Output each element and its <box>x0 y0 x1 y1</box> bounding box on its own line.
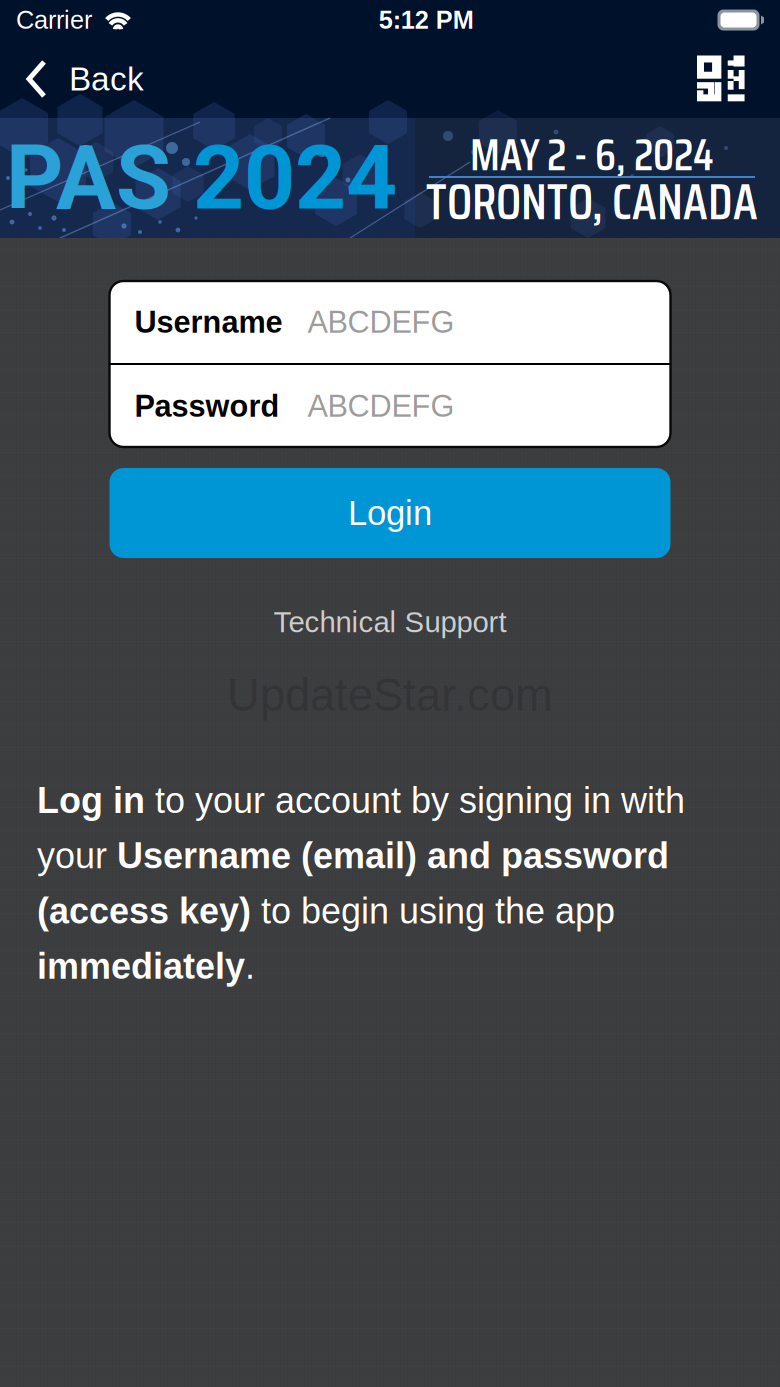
staticText: PAS <box>6 126 171 230</box>
staticText: Log in to your account by signing in wit… <box>37 781 685 986</box>
staticText: Carrier <box>16 6 92 34</box>
staticText: Password <box>134 389 279 423</box>
button[interactable]: Password <box>109 365 670 447</box>
staticText: MAY 2 - 6, 2024 <box>470 120 714 190</box>
button[interactable]: Login <box>109 468 670 558</box>
staticText: ABCDEFG <box>307 305 454 339</box>
button[interactable]: Scan QR code <box>667 40 780 118</box>
staticText: 5:12 PM <box>379 6 474 34</box>
staticText: ABCDEFG <box>307 389 454 423</box>
staticText: UpdateStar.com <box>227 670 553 720</box>
staticText: Username <box>134 305 282 339</box>
staticText: TORONTO, CANADA <box>426 163 758 241</box>
staticText: Login <box>348 494 432 532</box>
button[interactable]: Technical Support <box>109 607 670 637</box>
staticText: 2024 <box>171 126 397 230</box>
button[interactable]: Back <box>0 40 170 118</box>
button[interactable]: Username <box>109 281 670 363</box>
staticText: Technical Support <box>273 606 506 638</box>
staticText: Back <box>69 60 144 98</box>
